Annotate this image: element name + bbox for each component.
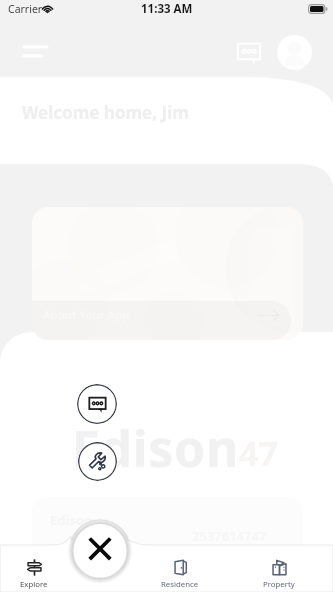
button[interactable]: Close menu [74,524,126,576]
staticText: 11:33 AM [141,1,193,17]
staticText: Residence [161,579,199,590]
button[interactable]: Edison [32,497,303,572]
button[interactable]: Property [249,557,309,590]
button[interactable]: Residence [150,557,210,590]
staticText: 47 [239,430,278,476]
button[interactable]: Menu [16,36,50,70]
button[interactable]: About Your App [32,207,303,340]
staticText: 2537614747 [192,527,267,545]
button[interactable]: Profile [277,35,312,70]
staticText: Edison [50,511,93,529]
button[interactable]: Services [78,442,117,481]
staticText: Edison [72,414,239,482]
staticText: Property [263,579,295,590]
staticText: Explore [20,579,48,590]
button[interactable]: Explore [4,557,64,590]
staticText: Welcome home, Jim [22,101,189,124]
button[interactable]: Chat [77,384,117,424]
button[interactable]: Messages [236,40,262,66]
staticText: Carrier [8,2,43,16]
